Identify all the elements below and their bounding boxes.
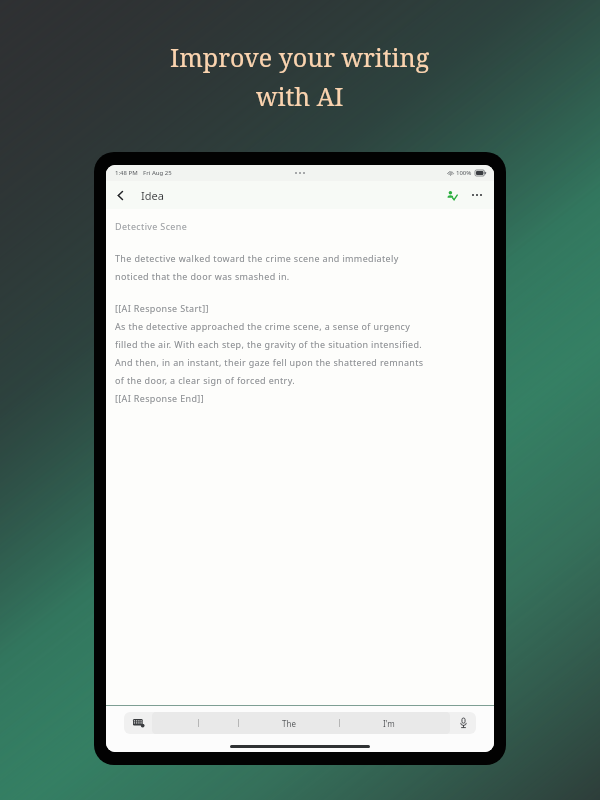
staticText: [[AI Response Start]] — [115, 302, 209, 314]
staticText: 1:48 PM — [115, 169, 138, 177]
staticText: I'm — [383, 718, 395, 729]
staticText: The detective walked toward the crime sc… — [115, 252, 399, 264]
staticText: As the detective approached the crime sc… — [115, 320, 411, 332]
button[interactable]: I'm — [379, 718, 399, 729]
staticText: Improve your writing — [170, 40, 430, 74]
staticText: Fri Aug 25 — [143, 169, 172, 177]
staticText: 100% — [456, 169, 472, 177]
staticText: Detective Scene — [115, 220, 188, 232]
staticText: filled the air. With each step, the grav… — [115, 338, 423, 350]
button[interactable]: Voice input — [450, 712, 476, 734]
staticText: noticed that the door was smashed in. — [115, 270, 290, 282]
staticText: of the door, a clear sign of forced entr… — [115, 374, 296, 386]
button[interactable]: Back — [106, 181, 134, 209]
staticText: And then, in an instant, their gaze fell… — [115, 356, 424, 368]
button[interactable]: Collaborate — [438, 181, 464, 209]
button[interactable]: Keyboard settings — [124, 712, 152, 734]
staticText: Idea — [141, 188, 164, 203]
staticText: with AI — [256, 79, 344, 113]
staticText: [[AI Response End]] — [115, 392, 204, 404]
staticText: The — [282, 718, 296, 729]
button[interactable]: The — [278, 718, 300, 729]
button[interactable]: More options — [464, 181, 490, 209]
